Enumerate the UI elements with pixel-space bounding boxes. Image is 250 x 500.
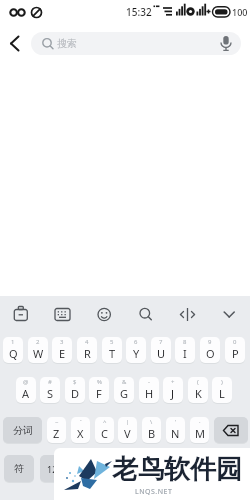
staticText: 搜索 <box>57 37 77 50</box>
staticText: Z <box>53 426 60 441</box>
staticText: F <box>96 386 102 401</box>
button[interactable]: 。 <box>176 455 206 482</box>
staticText: @ <box>23 378 29 386</box>
staticText: & <box>122 378 127 386</box>
button[interactable]: | <box>118 417 137 443</box>
staticText: H <box>145 386 154 401</box>
button[interactable]: % <box>89 377 109 403</box>
staticText: 3 <box>60 338 64 346</box>
button[interactable]: 2 <box>28 337 48 363</box>
staticText: B <box>148 426 156 441</box>
staticText: ( <box>197 378 199 386</box>
staticText: O <box>206 346 215 361</box>
staticText: C <box>101 426 108 441</box>
button[interactable] <box>214 417 248 443</box>
button[interactable]: 6 <box>126 337 146 363</box>
staticText: I <box>183 346 187 361</box>
button[interactable]: 搜索 <box>31 32 241 55</box>
staticText: J <box>171 386 175 401</box>
button[interactable]: ( <box>188 377 208 403</box>
staticText: ` <box>80 418 82 426</box>
staticText: 6 <box>134 338 138 346</box>
staticText: LNQS.NET <box>135 487 173 497</box>
button[interactable]: + <box>163 377 183 403</box>
staticText: 100 <box>232 6 248 18</box>
staticText: L <box>219 386 225 401</box>
button[interactable]: - <box>139 377 159 403</box>
staticText: 。 <box>186 462 196 475</box>
staticText: ' <box>175 418 177 426</box>
staticText: V <box>124 426 131 441</box>
button[interactable]: 8 <box>175 337 195 363</box>
staticText: 分词 <box>13 424 33 437</box>
staticText: 符 <box>14 462 24 475</box>
staticText: # <box>48 378 52 386</box>
staticText: 1 <box>11 338 15 346</box>
button[interactable]: # <box>40 377 60 403</box>
staticText: - <box>148 378 150 386</box>
button[interactable]: 7 <box>151 337 171 363</box>
staticText: 8 <box>183 338 187 346</box>
staticText: % <box>97 378 102 386</box>
staticText: ) <box>221 378 223 386</box>
staticText: $ <box>73 378 77 386</box>
staticText: A <box>22 386 30 401</box>
staticText: T <box>109 346 116 361</box>
button[interactable] <box>0 0 30 60</box>
staticText: K <box>195 386 202 401</box>
staticText: R <box>84 346 91 361</box>
staticText: \ <box>150 418 153 426</box>
button[interactable]: · <box>190 417 209 443</box>
staticText: 15:32 <box>126 5 152 19</box>
staticText: · <box>199 418 201 426</box>
staticText: + <box>171 378 175 386</box>
staticText: P <box>232 346 239 361</box>
staticText: S <box>47 386 54 401</box>
staticText: U <box>157 346 166 361</box>
button[interactable]: ~ <box>47 417 66 443</box>
button[interactable]: 分词 <box>3 417 42 443</box>
staticText: | <box>126 418 130 426</box>
staticText: 123 <box>47 463 63 475</box>
staticText: Q <box>9 346 18 361</box>
button[interactable]: $ <box>65 377 85 403</box>
staticText: 0 <box>233 338 237 346</box>
staticText: 9 <box>208 338 212 346</box>
button[interactable]: 0 <box>225 337 245 363</box>
staticText: E <box>59 346 66 361</box>
staticText: 4 <box>85 338 89 346</box>
staticText: 老鸟软件园 <box>112 453 242 486</box>
button[interactable]: ' <box>166 417 185 443</box>
staticText: 2 <box>36 338 40 346</box>
staticText: 7 <box>159 338 163 346</box>
button[interactable]: 9 <box>200 337 220 363</box>
button[interactable]: 123 <box>40 455 70 482</box>
button[interactable]: ` <box>71 417 90 443</box>
button[interactable]: 5 <box>102 337 122 363</box>
button[interactable]: \ <box>142 417 161 443</box>
button[interactable]: ^ <box>95 417 114 443</box>
staticText: ~ <box>55 418 59 426</box>
staticText: 5 <box>110 338 114 346</box>
staticText: G <box>120 386 129 401</box>
staticText: M <box>195 426 205 441</box>
button[interactable]: ) <box>212 377 232 403</box>
button[interactable] <box>212 455 247 482</box>
button[interactable]: @ <box>16 377 36 403</box>
button[interactable] <box>76 455 170 482</box>
button[interactable]: 符 <box>4 455 34 482</box>
staticText: X <box>77 426 84 441</box>
button[interactable]: 4 <box>77 337 97 363</box>
button[interactable]: 1 <box>3 337 23 363</box>
staticText: ^ <box>103 418 107 426</box>
button[interactable]: & <box>114 377 134 403</box>
staticText: N <box>171 426 180 441</box>
button[interactable]: 3 <box>52 337 72 363</box>
staticText: Y <box>133 346 140 361</box>
staticText: W <box>33 346 44 361</box>
staticText: D <box>71 386 80 401</box>
